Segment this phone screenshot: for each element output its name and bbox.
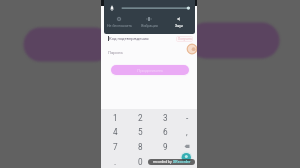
staticText: 5 [138,127,143,137]
button[interactable]: 8 [129,139,151,154]
button[interactable]: 7 [104,139,126,154]
staticText: Пароль [108,50,123,55]
staticText: 1 [113,113,118,123]
button[interactable]: Звук [164,14,194,30]
staticText: 2 [138,113,143,123]
staticText: XRecorder [173,160,191,164]
button[interactable]: 4 [104,124,126,139]
button[interactable]: Пароль [108,49,170,56]
button[interactable]: Код подтверждения [109,35,171,42]
staticText: 6 [163,127,168,137]
staticText: 7 [113,142,118,152]
staticText: 9 [163,142,168,152]
staticText: , [186,127,188,137]
button[interactable]: , [176,124,197,139]
button[interactable]: 9 [154,139,176,154]
staticText: . [114,157,117,167]
button[interactable]: Продолжить [111,65,189,75]
button[interactable]: 2 [129,110,151,125]
button[interactable]: 3 [154,110,176,125]
staticText: 3 [163,113,168,123]
staticText: recorded by [153,160,173,164]
staticText: Не беспокоить [107,24,132,28]
staticText: Код подтверждения [109,36,149,41]
staticText: 8 [138,142,143,152]
staticText: Звук [175,24,183,28]
button[interactable]: 6 [154,124,176,139]
button[interactable]: - [176,110,197,125]
staticText: - [186,113,189,123]
button[interactable]: 1 [104,110,126,125]
staticText: 0 [138,157,143,167]
button[interactable]: 0 [129,154,151,168]
staticText: Продолжить [137,68,163,73]
button[interactable]: . [104,154,126,168]
button[interactable]: Получить [176,36,193,42]
staticText: Вибрация [141,24,158,28]
staticText: 4 [113,127,118,137]
button[interactable]: Вибрация [134,14,164,30]
button[interactable]: 5 [129,124,151,139]
staticText: Получить [178,37,192,41]
button[interactable]: Backspace [176,139,197,154]
button[interactable]: Не беспокоить [104,14,134,30]
